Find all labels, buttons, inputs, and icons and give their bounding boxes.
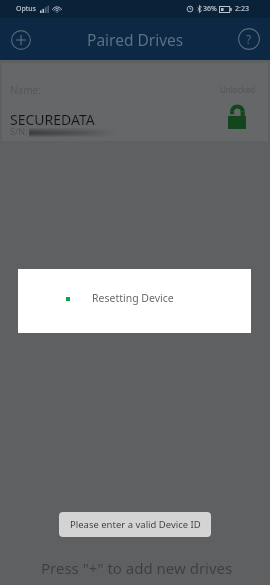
- button[interactable]: Name:: [2, 63, 268, 141]
- staticText: SECUREDATA: [10, 110, 95, 129]
- staticText: ?: [246, 31, 252, 47]
- staticText: Unlocked: [220, 84, 256, 95]
- staticText: Optus: [16, 4, 36, 14]
- staticText: Resetting Device: [92, 291, 174, 305]
- staticText: Name:: [10, 83, 41, 97]
- staticText: Press "+" to add new drives: [41, 558, 233, 578]
- staticText: Paired Drives: [87, 29, 184, 50]
- button[interactable]: Help: [236, 26, 262, 52]
- staticText: 36%: [203, 4, 217, 14]
- staticText: Please enter a valid Device ID: [70, 518, 201, 531]
- staticText: S/N:: [10, 125, 28, 137]
- button[interactable]: Add drive: [8, 27, 34, 53]
- staticText: 2:23: [235, 4, 249, 14]
